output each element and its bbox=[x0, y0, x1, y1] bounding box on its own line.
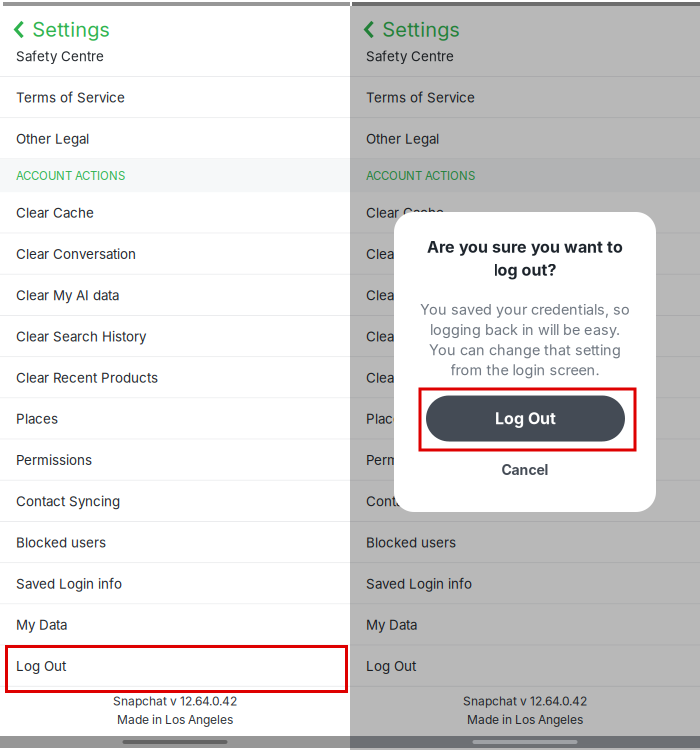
button[interactable]: Clear Recent Products bbox=[350, 357, 700, 398]
staticText: Clear Recent Products bbox=[366, 370, 508, 386]
staticText: Places bbox=[16, 411, 58, 427]
button[interactable]: Saved Login info bbox=[350, 563, 700, 604]
button[interactable]: Log Out bbox=[350, 646, 700, 687]
staticText: Safety Centre bbox=[16, 48, 104, 64]
button[interactable]: My Data bbox=[0, 604, 350, 646]
button[interactable]: Clear Recent Products bbox=[0, 357, 350, 398]
button[interactable]: Places bbox=[0, 398, 350, 440]
staticText: Terms of Service bbox=[16, 89, 125, 106]
button[interactable]: Blocked users bbox=[0, 522, 350, 563]
button[interactable]: Cancel bbox=[465, 456, 585, 484]
staticText: Clear Conversation bbox=[366, 246, 486, 262]
staticText: log out? bbox=[493, 260, 556, 280]
staticText: Clear Cache bbox=[366, 205, 444, 221]
staticText: Contact Syncing bbox=[366, 493, 470, 509]
staticText: Clear My AI data bbox=[366, 287, 469, 303]
staticText: Snapchat v 12.64.0.42 bbox=[113, 694, 237, 708]
staticText: Clear Cache bbox=[16, 205, 94, 221]
staticText: from the login screen. bbox=[450, 361, 599, 379]
button[interactable]: Saved Login info bbox=[0, 563, 350, 604]
staticText: Saved Login info bbox=[16, 576, 122, 592]
staticText: Are you sure you want to bbox=[427, 237, 623, 257]
button[interactable]: Permissions bbox=[0, 440, 350, 481]
staticText: Permissions bbox=[16, 452, 92, 468]
button[interactable]: Clear Cache bbox=[0, 192, 350, 234]
staticText: Clear Recent Products bbox=[16, 370, 158, 386]
staticText: You saved your credentials, so bbox=[420, 301, 630, 318]
button[interactable]: Contact Syncing bbox=[350, 481, 700, 522]
staticText: ACCOUNT ACTIONS bbox=[16, 169, 125, 183]
staticText: Clear My AI data bbox=[16, 287, 119, 303]
button[interactable]: Other Legal bbox=[350, 118, 700, 159]
staticText: Clear Conversation bbox=[16, 246, 136, 262]
button[interactable]: My Data bbox=[350, 604, 700, 646]
button[interactable]: Back bbox=[14, 20, 24, 39]
staticText: Places bbox=[366, 411, 408, 427]
button[interactable]: Safety Centre bbox=[0, 36, 350, 77]
button[interactable]: Clear Cache bbox=[350, 192, 700, 234]
staticText: Contact Syncing bbox=[16, 493, 120, 509]
button[interactable]: Log Out bbox=[0, 646, 350, 687]
button[interactable]: Contact Syncing bbox=[0, 481, 350, 522]
staticText: Settings bbox=[32, 17, 109, 42]
button[interactable]: Clear Search History bbox=[350, 316, 700, 357]
button[interactable]: Other Legal bbox=[0, 118, 350, 159]
staticText: Log Out bbox=[366, 658, 416, 674]
button[interactable]: Safety Centre bbox=[350, 36, 700, 77]
button[interactable]: Places bbox=[350, 398, 700, 440]
staticText: Snapchat v 12.64.0.42 bbox=[463, 694, 587, 708]
staticText: You can change that setting bbox=[429, 341, 621, 359]
button[interactable]: Clear My AI data bbox=[0, 275, 350, 316]
button[interactable]: Log Out bbox=[426, 395, 625, 441]
button[interactable]: Blocked users bbox=[350, 522, 700, 563]
staticText: Settings bbox=[382, 17, 459, 42]
button[interactable]: Clear My AI data bbox=[350, 275, 700, 316]
staticText: Terms of Service bbox=[366, 89, 475, 106]
staticText: My Data bbox=[16, 617, 67, 633]
staticText: Log Out bbox=[16, 658, 66, 674]
staticText: Cancel bbox=[501, 461, 548, 478]
button[interactable]: Terms of Service bbox=[350, 77, 700, 118]
button[interactable]: Permissions bbox=[350, 440, 700, 481]
staticText: My Data bbox=[366, 617, 417, 633]
staticText: Blocked users bbox=[366, 534, 456, 551]
staticText: Safety Centre bbox=[366, 48, 454, 64]
button[interactable]: Terms of Service bbox=[0, 77, 350, 118]
staticText: logging back in will be easy. bbox=[430, 321, 620, 338]
staticText: Permissions bbox=[366, 452, 442, 468]
staticText: Log Out bbox=[495, 409, 556, 428]
staticText: Clear Search History bbox=[366, 328, 496, 345]
button[interactable]: Back bbox=[364, 20, 374, 39]
staticText: Made in Los Angeles bbox=[467, 712, 583, 727]
button[interactable]: Clear Conversation bbox=[0, 234, 350, 275]
staticText: Saved Login info bbox=[366, 576, 472, 592]
staticText: Clear Search History bbox=[16, 328, 146, 345]
staticText: Made in Los Angeles bbox=[117, 712, 233, 727]
staticText: Other Legal bbox=[366, 131, 439, 147]
button[interactable]: Clear Conversation bbox=[350, 234, 700, 275]
staticText: Blocked users bbox=[16, 534, 106, 551]
staticText: Other Legal bbox=[16, 131, 89, 147]
button[interactable]: Clear Search History bbox=[0, 316, 350, 357]
staticText: ACCOUNT ACTIONS bbox=[366, 169, 475, 183]
